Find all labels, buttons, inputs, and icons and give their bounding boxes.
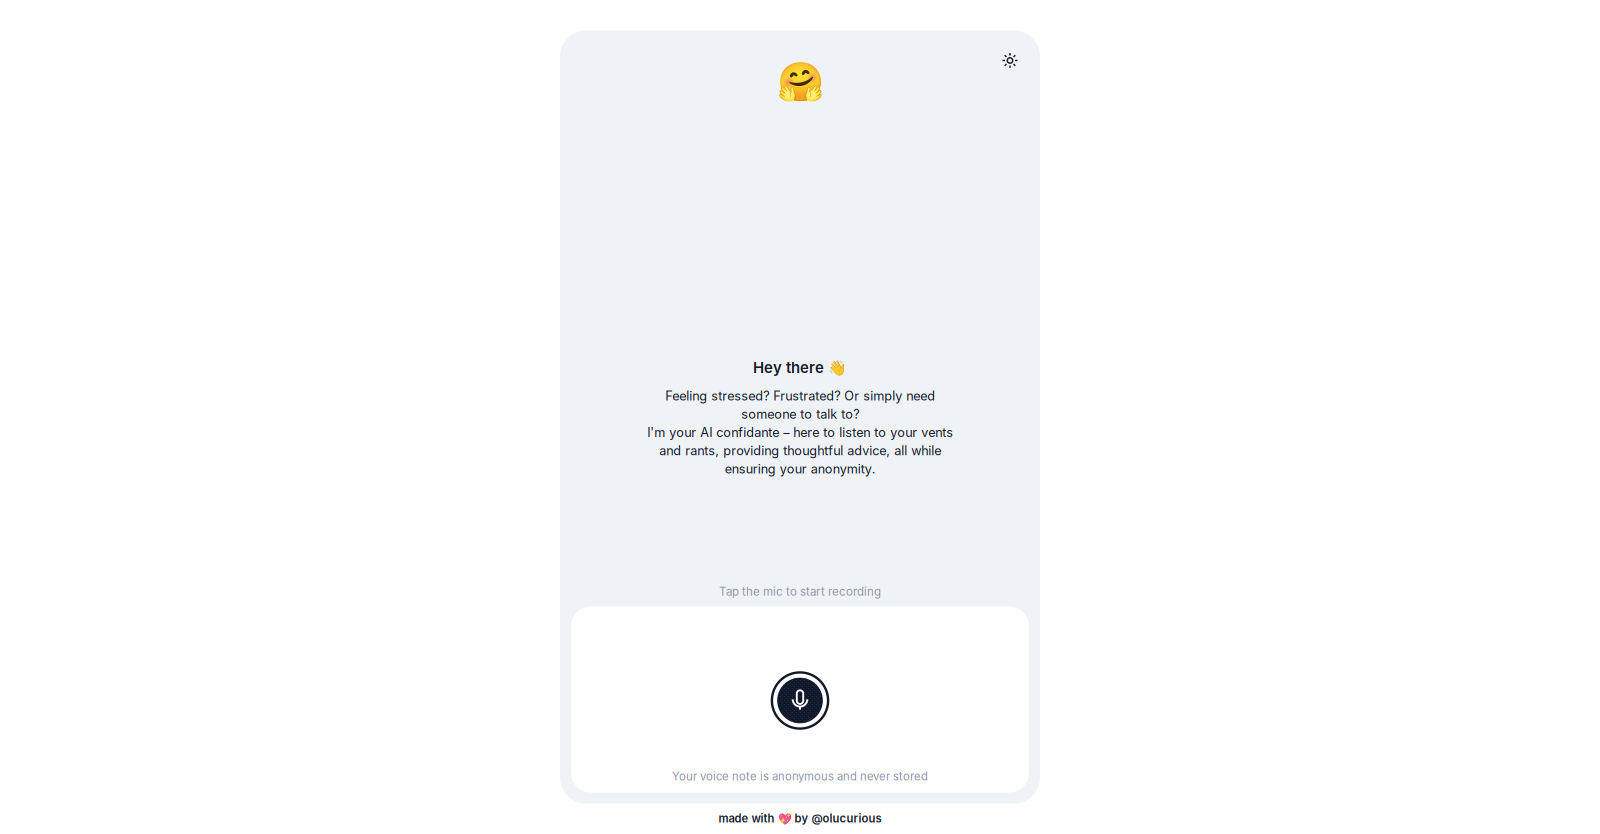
staticText: Your voice note is anonymous and never s… xyxy=(672,769,928,783)
staticText: Hey there 👋 xyxy=(753,358,847,377)
staticText: made with 💖 by @olucurious xyxy=(718,812,881,825)
staticText: 🤗 xyxy=(776,60,823,105)
staticText: Feeling stressed? Frustrated? Or simply … xyxy=(647,388,953,476)
button[interactable]: Start recording xyxy=(770,670,830,730)
button[interactable]: made with 💖 by @olucurious xyxy=(712,809,887,828)
staticText: Tap the mic to start recording xyxy=(719,584,881,598)
button[interactable]: Toggle appearance xyxy=(993,43,1027,77)
